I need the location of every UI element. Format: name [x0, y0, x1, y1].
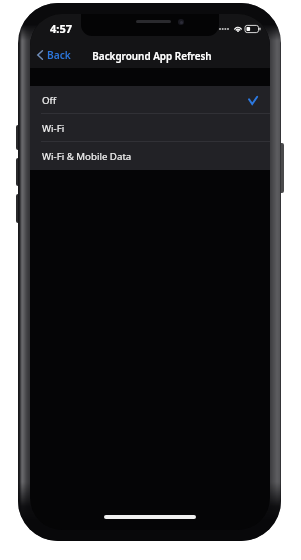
button[interactable]: Wi-Fi: [30, 114, 270, 142]
button[interactable]: Back: [33, 46, 75, 64]
staticText: Background App Refresh: [32, 49, 270, 62]
staticText: Off: [42, 94, 57, 107]
button[interactable]: Wi-Fi & Mobile Data: [30, 142, 270, 170]
staticText: 4:57: [50, 21, 72, 36]
staticText: Wi-Fi & Mobile Data: [42, 150, 132, 163]
button[interactable]: Off: [30, 86, 270, 114]
staticText: Wi-Fi: [42, 122, 65, 135]
staticText: Back: [47, 48, 71, 62]
